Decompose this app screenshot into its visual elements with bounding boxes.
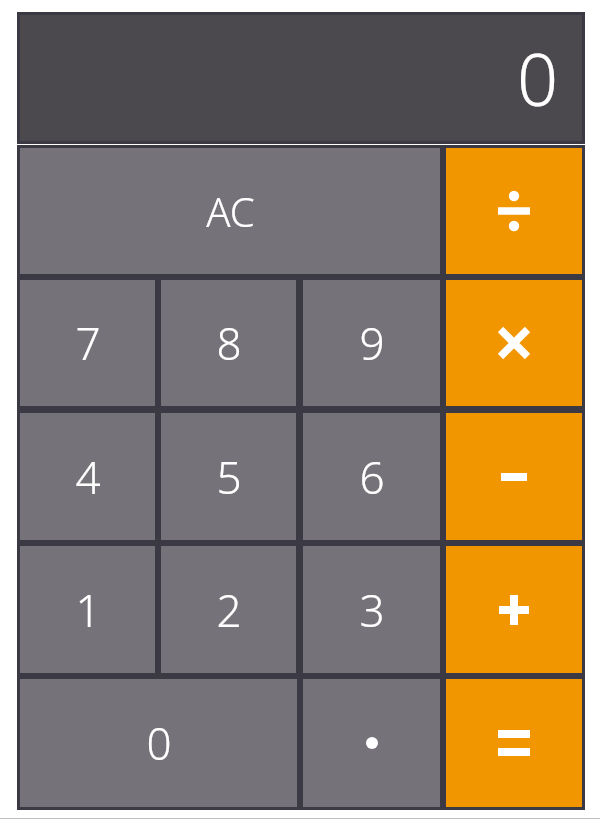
staticText: AC: [206, 184, 255, 238]
staticText: 8: [216, 313, 242, 373]
staticText: 5: [216, 447, 242, 507]
button[interactable]: Decimal point: [303, 679, 440, 807]
button[interactable]: Minus: [446, 413, 582, 540]
staticText: 6: [359, 447, 385, 507]
button[interactable]: 3: [303, 546, 440, 673]
button[interactable]: Equals: [446, 679, 582, 807]
button[interactable]: 9: [303, 280, 440, 406]
button[interactable]: 8: [161, 280, 296, 406]
staticText: 3: [359, 580, 385, 640]
staticText: 0: [146, 713, 172, 773]
staticText: 0: [516, 29, 558, 127]
button[interactable]: 6: [303, 413, 440, 540]
button[interactable]: 1: [20, 546, 155, 673]
button[interactable]: 7: [20, 280, 155, 406]
button[interactable]: 5: [161, 413, 296, 540]
button[interactable]: AC: [20, 148, 440, 274]
button[interactable]: Multiply: [446, 280, 582, 406]
staticText: 7: [75, 313, 101, 373]
button[interactable]: 2: [161, 546, 296, 673]
button[interactable]: Plus: [446, 546, 582, 673]
button[interactable]: 4: [20, 413, 155, 540]
staticText: 1: [75, 580, 101, 640]
staticText: 4: [75, 447, 101, 507]
staticText: 9: [359, 313, 385, 373]
staticText: 2: [216, 580, 242, 640]
button[interactable]: 0: [20, 679, 297, 807]
button[interactable]: Divide: [446, 148, 582, 274]
